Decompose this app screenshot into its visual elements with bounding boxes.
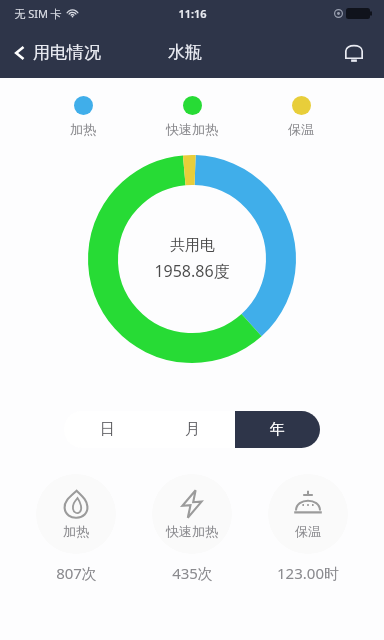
button[interactable]: 保温 [268,474,348,554]
button[interactable]: 年 [235,411,320,448]
staticText: 807次 [56,563,97,583]
button[interactable]: 月 [150,411,235,448]
staticText: 加热 [63,523,89,539]
staticText: 123.00时 [277,563,339,583]
staticText: 年 [270,420,285,439]
staticText: 快速加热 [166,523,218,539]
button[interactable]: 快速加热 [152,474,232,554]
button[interactable]: Notifications [324,32,384,72]
staticText: 加热 [70,121,96,137]
staticText: 保温 [295,523,321,539]
staticText: 用电情况 [33,42,101,63]
staticText: 月 [185,420,200,439]
button[interactable]: 日 [64,411,150,448]
staticText: 日 [100,420,115,439]
button[interactable]: 加热 [36,474,116,554]
staticText: 水瓶 [168,42,202,63]
staticText: 快速加热 [166,121,218,137]
button[interactable]: 用电情况 [0,36,111,69]
staticText: 共用电 [170,236,215,255]
staticText: 保温 [288,121,314,137]
staticText: 无 SIM 卡 [14,6,62,21]
staticText: 1958.86度 [154,260,230,282]
staticText: 11:16 [178,6,207,21]
staticText: 435次 [172,563,213,583]
